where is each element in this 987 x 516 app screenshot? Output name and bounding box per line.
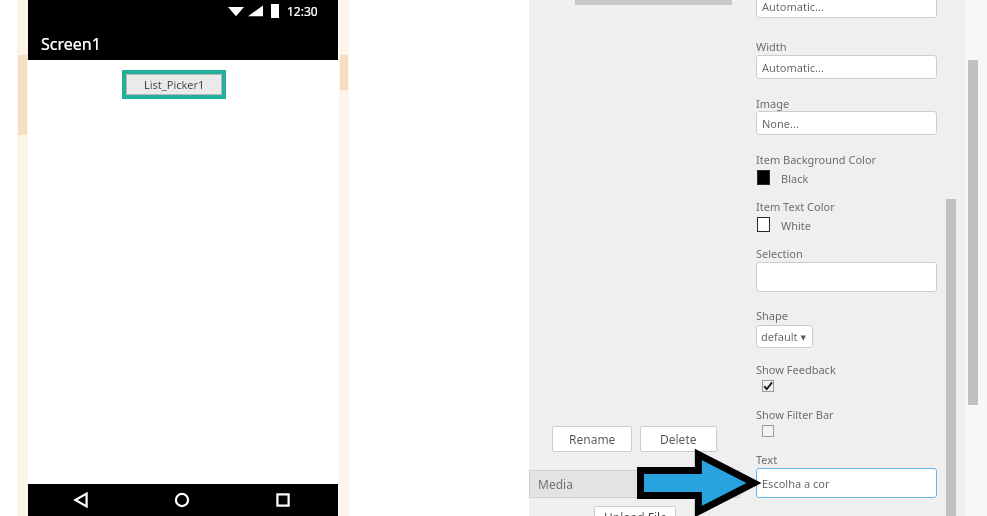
staticText: default ▾ xyxy=(761,329,806,344)
button[interactable]: default ▾ xyxy=(756,325,813,348)
staticText: Automatic... xyxy=(762,0,824,14)
other: Annotation arrow pointing to Text proper… xyxy=(637,452,755,514)
button[interactable] xyxy=(756,262,937,292)
button[interactable]: Checked xyxy=(762,380,774,392)
button[interactable]: Unchecked xyxy=(762,425,774,437)
button[interactable]: Automatic... xyxy=(756,55,937,79)
staticText: Image xyxy=(756,96,790,111)
button[interactable]: Back xyxy=(73,492,89,508)
button[interactable]: Media xyxy=(529,470,740,498)
button[interactable]: Rename xyxy=(552,426,632,452)
staticText: None... xyxy=(762,116,799,131)
staticText: Escolha a cor xyxy=(762,476,830,491)
staticText: Selection xyxy=(756,246,803,261)
staticText: Rename xyxy=(569,431,616,447)
staticText: Show Filter Bar xyxy=(756,407,834,422)
staticText: Show Feedback xyxy=(756,362,836,377)
staticText: Screen1 xyxy=(41,33,101,55)
staticText: Item Text Color xyxy=(756,199,835,214)
button[interactable]: Black xyxy=(757,169,857,185)
button[interactable]: White xyxy=(757,216,857,232)
staticText: Shape xyxy=(756,308,788,323)
staticText: List_Picker1 xyxy=(144,77,205,92)
staticText: Black xyxy=(781,171,809,186)
button[interactable]: Escolha a cor xyxy=(756,468,937,498)
button[interactable]: Automatic... xyxy=(756,0,937,18)
staticText: Item Background Color xyxy=(756,152,877,167)
button[interactable]: None... xyxy=(756,111,937,135)
staticText: Automatic... xyxy=(762,60,824,75)
button[interactable]: List_Picker1 xyxy=(122,70,226,99)
staticText: Upload File xyxy=(604,509,667,516)
button[interactable]: Upload File xyxy=(594,506,676,516)
staticText: Delete xyxy=(660,431,697,447)
staticText: Media xyxy=(538,476,573,492)
staticText: 12:30 xyxy=(287,3,318,19)
button[interactable]: Recents xyxy=(275,492,291,508)
button[interactable]: Home xyxy=(174,492,190,508)
staticText: White xyxy=(781,218,812,233)
staticText: Text xyxy=(756,452,778,467)
staticText: Width xyxy=(756,39,787,54)
button[interactable]: Delete xyxy=(640,426,717,452)
